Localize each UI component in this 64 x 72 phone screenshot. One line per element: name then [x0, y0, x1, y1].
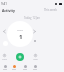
staticText: 1	[19, 33, 23, 41]
staticText: Steps	[17, 28, 24, 31]
button[interactable]: Walk	[0, 54, 9, 61]
staticText: This week	[44, 8, 57, 12]
button[interactable]: Next day	[32, 29, 37, 34]
button[interactable]: Activity	[10, 63, 18, 71]
staticText: Walk	[2, 58, 7, 61]
staticText: Activity	[2, 8, 15, 13]
button[interactable]: Goal	[31, 54, 40, 61]
button[interactable]: Previous day	[2, 29, 7, 34]
button[interactable]: Home	[1, 63, 9, 71]
staticText: Today, 12 Jan	[24, 16, 40, 20]
button[interactable]: Profile	[31, 63, 39, 71]
staticText: 9:41	[1, 2, 7, 6]
button[interactable]: Plan	[21, 63, 29, 71]
staticText: Goal	[33, 58, 38, 61]
button[interactable]: Add activity	[16, 53, 24, 61]
